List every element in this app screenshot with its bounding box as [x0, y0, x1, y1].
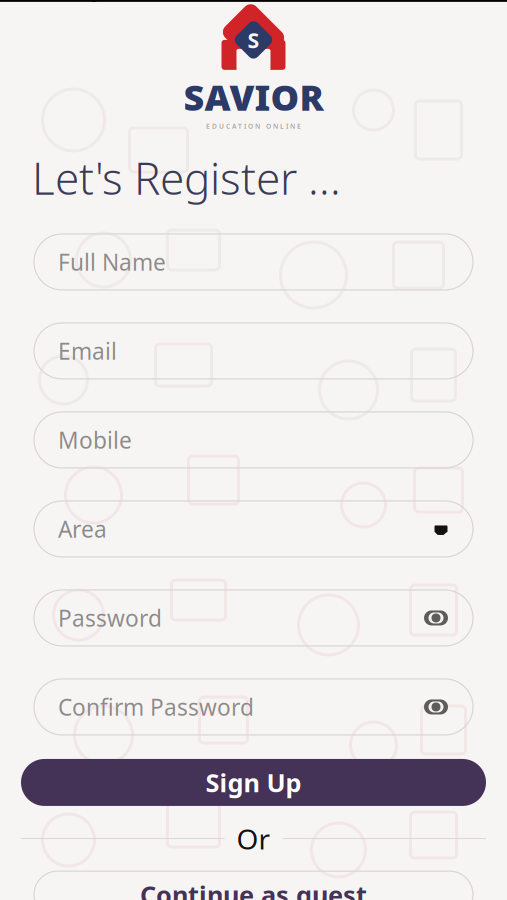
button[interactable]: Sign Up: [21, 759, 486, 806]
button[interactable]: Email: [34, 323, 473, 379]
staticText: Area: [58, 514, 107, 544]
button[interactable]: Password: [34, 590, 473, 646]
staticText: Mobile: [58, 425, 132, 455]
staticText: Full Name: [58, 247, 166, 277]
staticText: Sign Up: [205, 766, 301, 799]
staticText: Password: [58, 603, 162, 633]
staticText: S: [247, 26, 259, 54]
staticText: Let's Register ...: [32, 148, 341, 207]
button[interactable]: Area: [34, 501, 473, 557]
button[interactable]: Continue as guest: [34, 871, 473, 900]
staticText: E D U C A T I O N O N L I N E: [206, 122, 301, 131]
staticText: Confirm Password: [58, 692, 254, 722]
staticText: SAVIOR: [183, 73, 323, 121]
button[interactable]: Mobile: [34, 412, 473, 468]
staticText: Email: [58, 336, 117, 366]
button[interactable]: Full Name: [34, 234, 473, 290]
staticText: Or: [236, 820, 270, 857]
staticText: Continue as guest: [140, 878, 367, 900]
button[interactable]: Confirm Password: [34, 679, 473, 735]
